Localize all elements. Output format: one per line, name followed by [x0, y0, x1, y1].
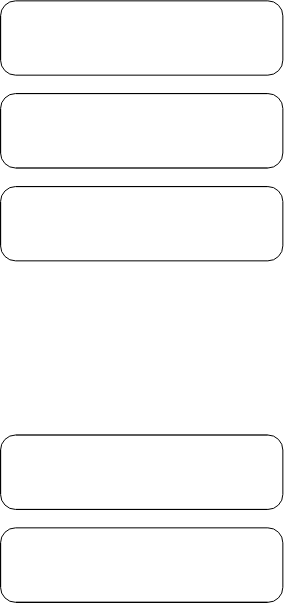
button[interactable]: List item 2 — [0, 92, 284, 170]
button[interactable]: List item 4 — [0, 434, 284, 512]
button[interactable]: List item 1 — [0, 0, 284, 78]
button[interactable]: List item 3 — [0, 185, 284, 263]
button[interactable]: List item 5 — [0, 526, 284, 603]
